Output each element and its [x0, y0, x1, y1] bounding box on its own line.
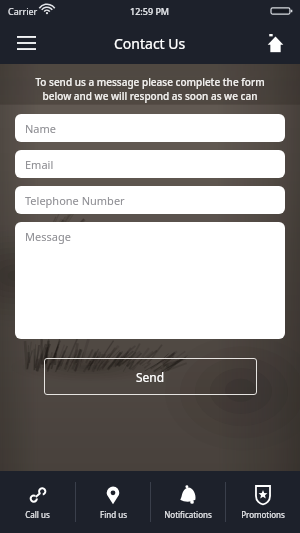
button[interactable]: Name	[15, 114, 285, 142]
staticText: Send	[136, 369, 165, 385]
staticText: Find us	[100, 509, 127, 520]
button[interactable]: Send	[44, 358, 257, 395]
button[interactable]: Promotions	[226, 471, 300, 533]
staticText: Contact Us	[114, 34, 186, 53]
staticText: Notifications	[164, 509, 212, 520]
staticText: Telephone Number	[25, 193, 125, 208]
staticText: Call us	[25, 509, 50, 520]
staticText: Promotions	[241, 509, 285, 520]
button[interactable]: Telephone Number	[15, 186, 285, 214]
staticText: Email	[25, 157, 54, 172]
button[interactable]: Message	[15, 222, 285, 339]
staticText: Name	[25, 121, 57, 136]
button[interactable]: Notifications	[151, 471, 225, 533]
staticText: Carrier	[8, 5, 38, 17]
button[interactable]: Menu	[10, 27, 42, 59]
button[interactable]: Home	[260, 28, 290, 58]
button[interactable]: Email	[15, 150, 285, 178]
staticText: Message	[25, 229, 71, 244]
staticText: To send us a message please complete the…	[21, 75, 279, 103]
staticText: 12:59 PM	[130, 5, 170, 17]
button[interactable]: Call us	[0, 471, 75, 533]
button[interactable]: Find us	[76, 471, 150, 533]
